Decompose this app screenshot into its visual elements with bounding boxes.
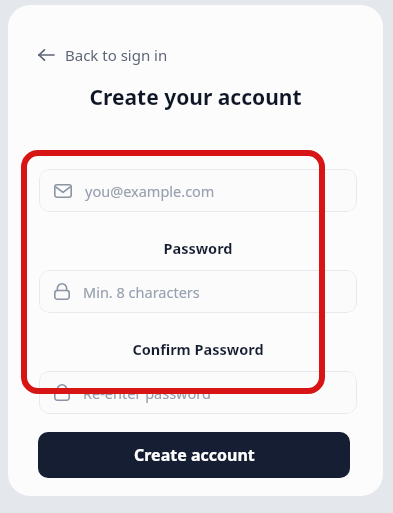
staticText: Re-enter password <box>83 383 211 403</box>
staticText: Confirm Password <box>39 339 357 359</box>
button[interactable]: Min. 8 characters <box>39 270 357 313</box>
staticText: Create your account <box>24 83 367 112</box>
button[interactable]: Create account <box>38 432 350 478</box>
staticText: Create account <box>134 444 255 466</box>
other: Back <box>38 48 55 62</box>
button[interactable]: Re-enter password <box>39 371 357 414</box>
staticText: you@example.com <box>85 181 215 201</box>
staticText: Password <box>39 238 357 258</box>
button[interactable]: you@example.com <box>39 169 357 212</box>
staticText: Min. 8 characters <box>83 282 200 302</box>
staticText: Back to sign in <box>65 45 168 65</box>
button[interactable]: Back <box>8 41 180 69</box>
